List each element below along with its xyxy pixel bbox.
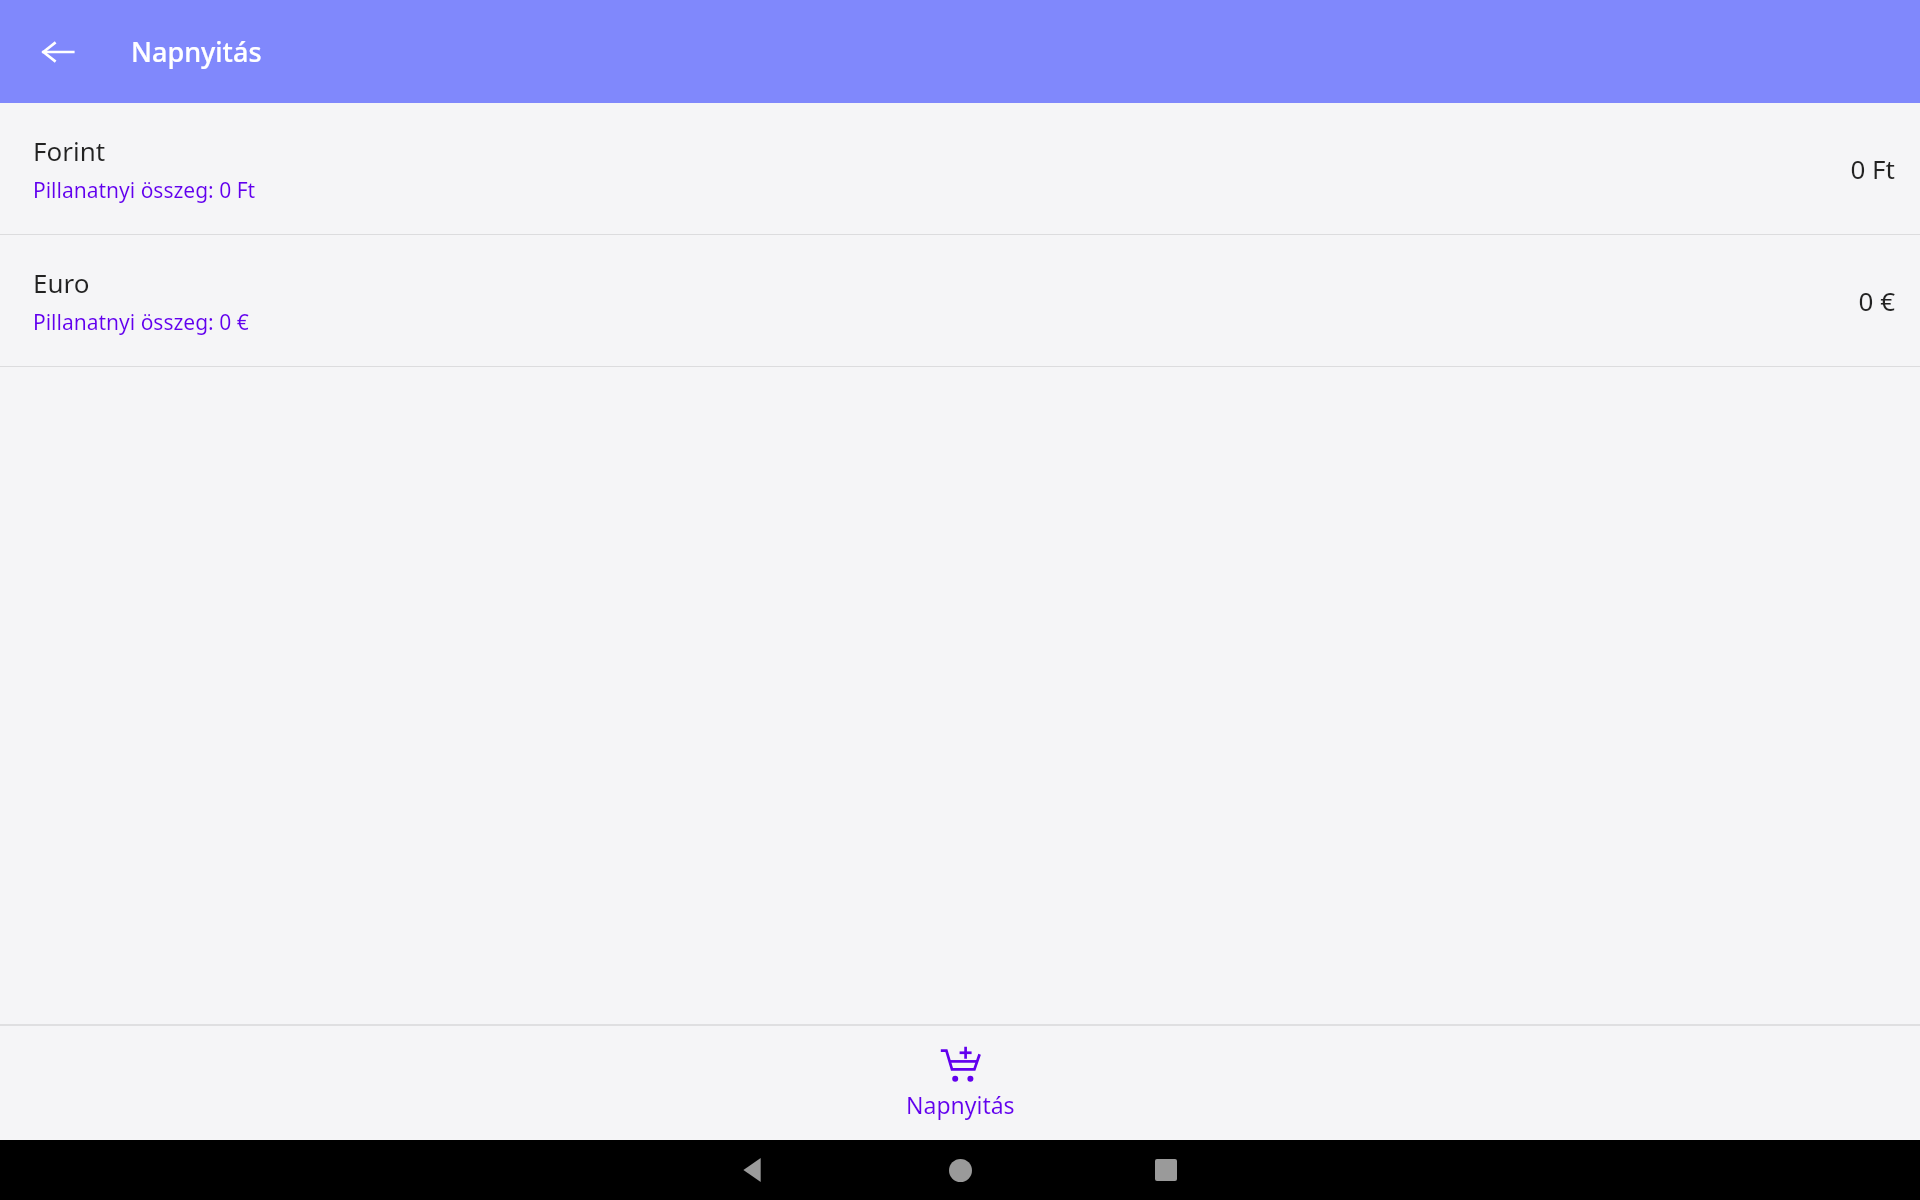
button[interactable]: Home (930, 1140, 990, 1200)
staticText: Pillanatnyi összeg: 0 Ft (33, 176, 256, 205)
button[interactable]: Back (723, 1140, 783, 1200)
button[interactable]: Napnyitás (850, 1039, 1070, 1128)
button[interactable]: Euro (0, 235, 1920, 366)
staticText: Forint (33, 133, 106, 168)
staticText: 0 Ft (1850, 151, 1895, 186)
staticText: Pillanatnyi összeg: 0 € (33, 308, 249, 337)
staticText: Napnyitás (131, 33, 262, 70)
button[interactable]: Forint (0, 103, 1920, 234)
staticText: Napnyitás (906, 1089, 1015, 1120)
button[interactable]: Recent apps (1136, 1140, 1196, 1200)
staticText: Euro (33, 265, 90, 300)
staticText: 0 € (1858, 283, 1895, 318)
button[interactable]: Back (26, 20, 90, 84)
